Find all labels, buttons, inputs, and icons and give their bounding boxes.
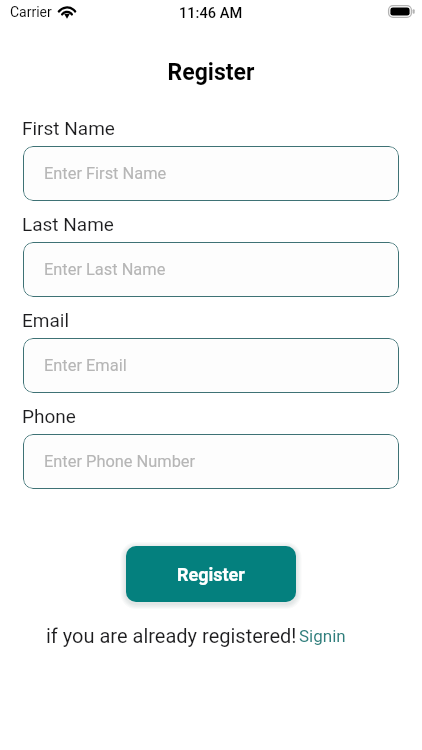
button[interactable]: Signin xyxy=(299,626,346,646)
staticText: Enter Email xyxy=(44,356,127,375)
staticText: if you are already registered! xyxy=(46,624,297,647)
button[interactable]: Enter Phone Number xyxy=(23,434,399,489)
staticText: Enter First Name xyxy=(44,164,167,183)
staticText: Phone xyxy=(22,405,76,427)
button[interactable]: Enter Last Name xyxy=(23,242,399,297)
staticText: Enter Phone Number xyxy=(44,452,196,471)
staticText: Last Name xyxy=(22,213,114,235)
button[interactable]: Register xyxy=(126,546,296,602)
staticText: Signin xyxy=(299,626,346,646)
staticText: Carrier xyxy=(10,4,52,20)
staticText: Email xyxy=(22,309,70,331)
staticText: Register xyxy=(177,564,245,585)
staticText: Enter Last Name xyxy=(44,260,166,279)
staticText: First Name xyxy=(22,117,115,139)
staticText: 11:46 AM xyxy=(179,4,243,21)
staticText: Register xyxy=(0,59,422,86)
button[interactable]: Enter Email xyxy=(23,338,399,393)
button[interactable]: Enter First Name xyxy=(23,146,399,201)
